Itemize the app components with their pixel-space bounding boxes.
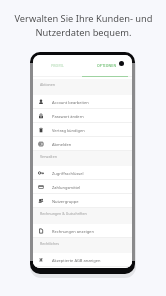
button[interactable]: Passwort ändern bbox=[33, 109, 132, 123]
staticText: Rechnungen & Gutschriften bbox=[40, 211, 87, 216]
button[interactable]: Vertrag kündigen bbox=[33, 123, 132, 137]
staticText: Passwort ändern bbox=[52, 114, 84, 119]
button[interactable]: Account bearbeiten bbox=[33, 95, 132, 109]
button[interactable]: Abmelden bbox=[33, 137, 132, 151]
staticText: Zugriffsschlüssel bbox=[52, 171, 84, 176]
staticText: Rechtliches bbox=[40, 241, 60, 246]
button[interactable]: OPTIONEN bbox=[82, 55, 132, 76]
button[interactable]: Zugriffsschlüssel bbox=[33, 166, 132, 180]
staticText: Nutzergruppe bbox=[52, 199, 79, 204]
staticText: Abmelden bbox=[52, 142, 72, 147]
button[interactable]: Nutzergruppe bbox=[33, 194, 132, 208]
other: Camera bbox=[119, 61, 124, 66]
button[interactable]: PROFIL bbox=[33, 55, 82, 76]
button[interactable]: Rechnungen anzeigen bbox=[33, 224, 132, 238]
staticText: Account bearbeiten bbox=[52, 100, 89, 105]
staticText: PROFIL bbox=[51, 63, 64, 68]
staticText: Verwalten Sie Ihre Kunden- und Nutzerdat… bbox=[14, 12, 153, 39]
staticText: Vertrag kündigen bbox=[52, 128, 85, 133]
staticText: Akzeptierte AGB anzeigen bbox=[52, 258, 101, 263]
staticText: OPTIONEN bbox=[97, 63, 117, 68]
staticText: Verwalten bbox=[40, 154, 57, 159]
staticText: Aktionen bbox=[40, 82, 56, 87]
button[interactable]: Akzeptierte AGB anzeigen bbox=[33, 253, 132, 267]
staticText: Zahlungsmittel bbox=[52, 185, 81, 190]
staticText: Rechnungen anzeigen bbox=[52, 229, 94, 234]
button[interactable]: Zahlungsmittel bbox=[33, 180, 132, 194]
